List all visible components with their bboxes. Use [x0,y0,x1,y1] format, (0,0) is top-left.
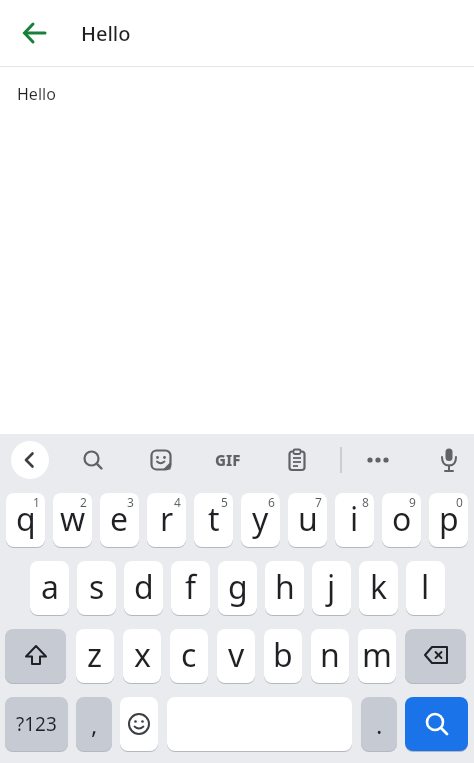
button[interactable] [70,437,116,483]
button[interactable] [405,629,466,683]
button[interactable] [274,437,320,483]
button[interactable]: l [406,561,445,615]
button[interactable]: i [335,493,374,547]
staticText: v [228,633,245,677]
staticText: 1 [33,494,40,510]
button[interactable]: r [147,493,186,547]
button[interactable] [11,441,49,479]
staticText: Hello [17,83,56,105]
button[interactable]: n [311,629,349,683]
button[interactable]: h [265,561,304,615]
staticText: Hello [81,20,131,47]
staticText: 8 [362,494,369,510]
button[interactable]: s [77,561,116,615]
button[interactable]: ?123 [5,697,68,751]
staticText: f [185,565,197,609]
staticText: x [134,633,151,677]
button[interactable] [355,437,401,483]
staticText: z [87,633,103,677]
staticText: k [370,565,388,609]
staticText: . [376,708,383,741]
staticText: q [16,497,36,541]
button[interactable]: f [171,561,210,615]
button[interactable]: v [217,629,255,683]
button[interactable]: z [76,629,114,683]
button[interactable]: t [194,493,233,547]
staticText: w [60,497,86,541]
staticText: 7 [315,494,322,510]
button[interactable] [11,9,59,57]
button[interactable]: c [170,629,208,683]
staticText: e [110,497,129,541]
staticText: o [392,497,412,541]
button[interactable]: . [361,697,397,751]
staticText: 9 [409,494,416,510]
button[interactable]: w [53,493,92,547]
staticText: d [134,565,154,609]
button[interactable]: u [288,493,327,547]
button[interactable] [120,697,158,751]
staticText: b [273,633,293,677]
staticText: 3 [127,494,134,510]
button[interactable]: m [358,629,396,683]
staticText: 5 [221,494,228,510]
staticText: s [89,565,105,609]
button[interactable]: x [123,629,161,683]
button[interactable]: b [264,629,302,683]
staticText: i [350,497,359,541]
button[interactable]: e [100,493,139,547]
button[interactable]: p [429,493,468,547]
button[interactable]: g [218,561,257,615]
staticText: 6 [268,494,275,510]
staticText: u [298,497,318,541]
staticText: g [228,565,248,609]
button[interactable]: j [312,561,351,615]
button[interactable]: GIF [205,437,251,483]
button[interactable]: , [76,697,112,751]
button[interactable]: y [241,493,280,547]
staticText: r [160,497,174,541]
staticText: h [275,565,295,609]
staticText: 4 [174,494,181,510]
staticText: l [421,565,430,609]
button[interactable]: d [124,561,163,615]
staticText: p [439,497,459,541]
staticText: c [181,633,197,677]
button[interactable] [405,697,468,751]
button[interactable] [5,629,66,683]
staticText: t [208,497,220,541]
button[interactable]: k [359,561,398,615]
staticText: 0 [456,494,463,510]
staticText: , [91,708,98,741]
staticText: GIF [215,450,241,470]
staticText: ?123 [16,711,57,737]
staticText: y [252,497,269,541]
staticText: n [320,633,340,677]
button[interactable] [138,437,184,483]
button[interactable] [426,437,472,483]
staticText: m [362,633,392,677]
staticText: 2 [80,494,87,510]
button[interactable]: a [30,561,69,615]
button[interactable]: q [6,493,45,547]
staticText: a [41,565,59,609]
button[interactable]: o [382,493,421,547]
staticText: j [327,565,336,609]
